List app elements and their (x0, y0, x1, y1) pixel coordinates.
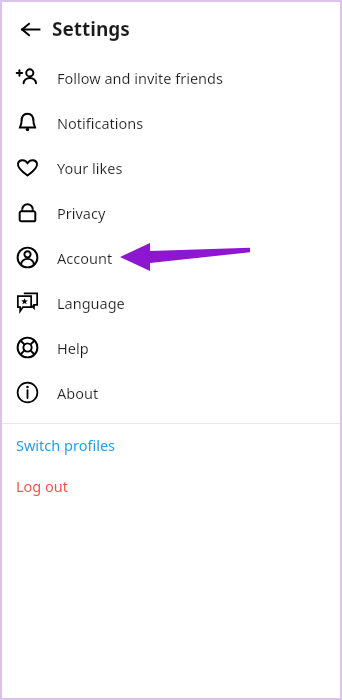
button[interactable]: Help (2, 325, 340, 370)
staticText: Log out (16, 476, 69, 496)
staticText: About (57, 383, 99, 403)
button[interactable]: Back (12, 11, 48, 47)
staticText: Settings (52, 16, 130, 42)
staticText: Your likes (57, 158, 123, 178)
staticText: Privacy (57, 203, 106, 223)
button[interactable]: Your likes (2, 145, 340, 190)
button[interactable]: Notifications (2, 100, 340, 145)
staticText: Language (57, 293, 125, 313)
button[interactable]: Language (2, 280, 340, 325)
button[interactable]: Switch profiles (2, 424, 340, 465)
staticText: Notifications (57, 113, 144, 133)
staticText: Help (57, 338, 89, 358)
staticText: Follow and invite friends (57, 68, 223, 88)
staticText: Account (57, 248, 113, 268)
staticText: Switch profiles (16, 435, 116, 455)
button[interactable]: Privacy (2, 190, 340, 235)
button[interactable]: Follow and invite friends (2, 55, 340, 100)
button[interactable]: About (2, 370, 340, 415)
button[interactable]: Account (2, 235, 340, 280)
button[interactable]: Log out (2, 465, 340, 506)
